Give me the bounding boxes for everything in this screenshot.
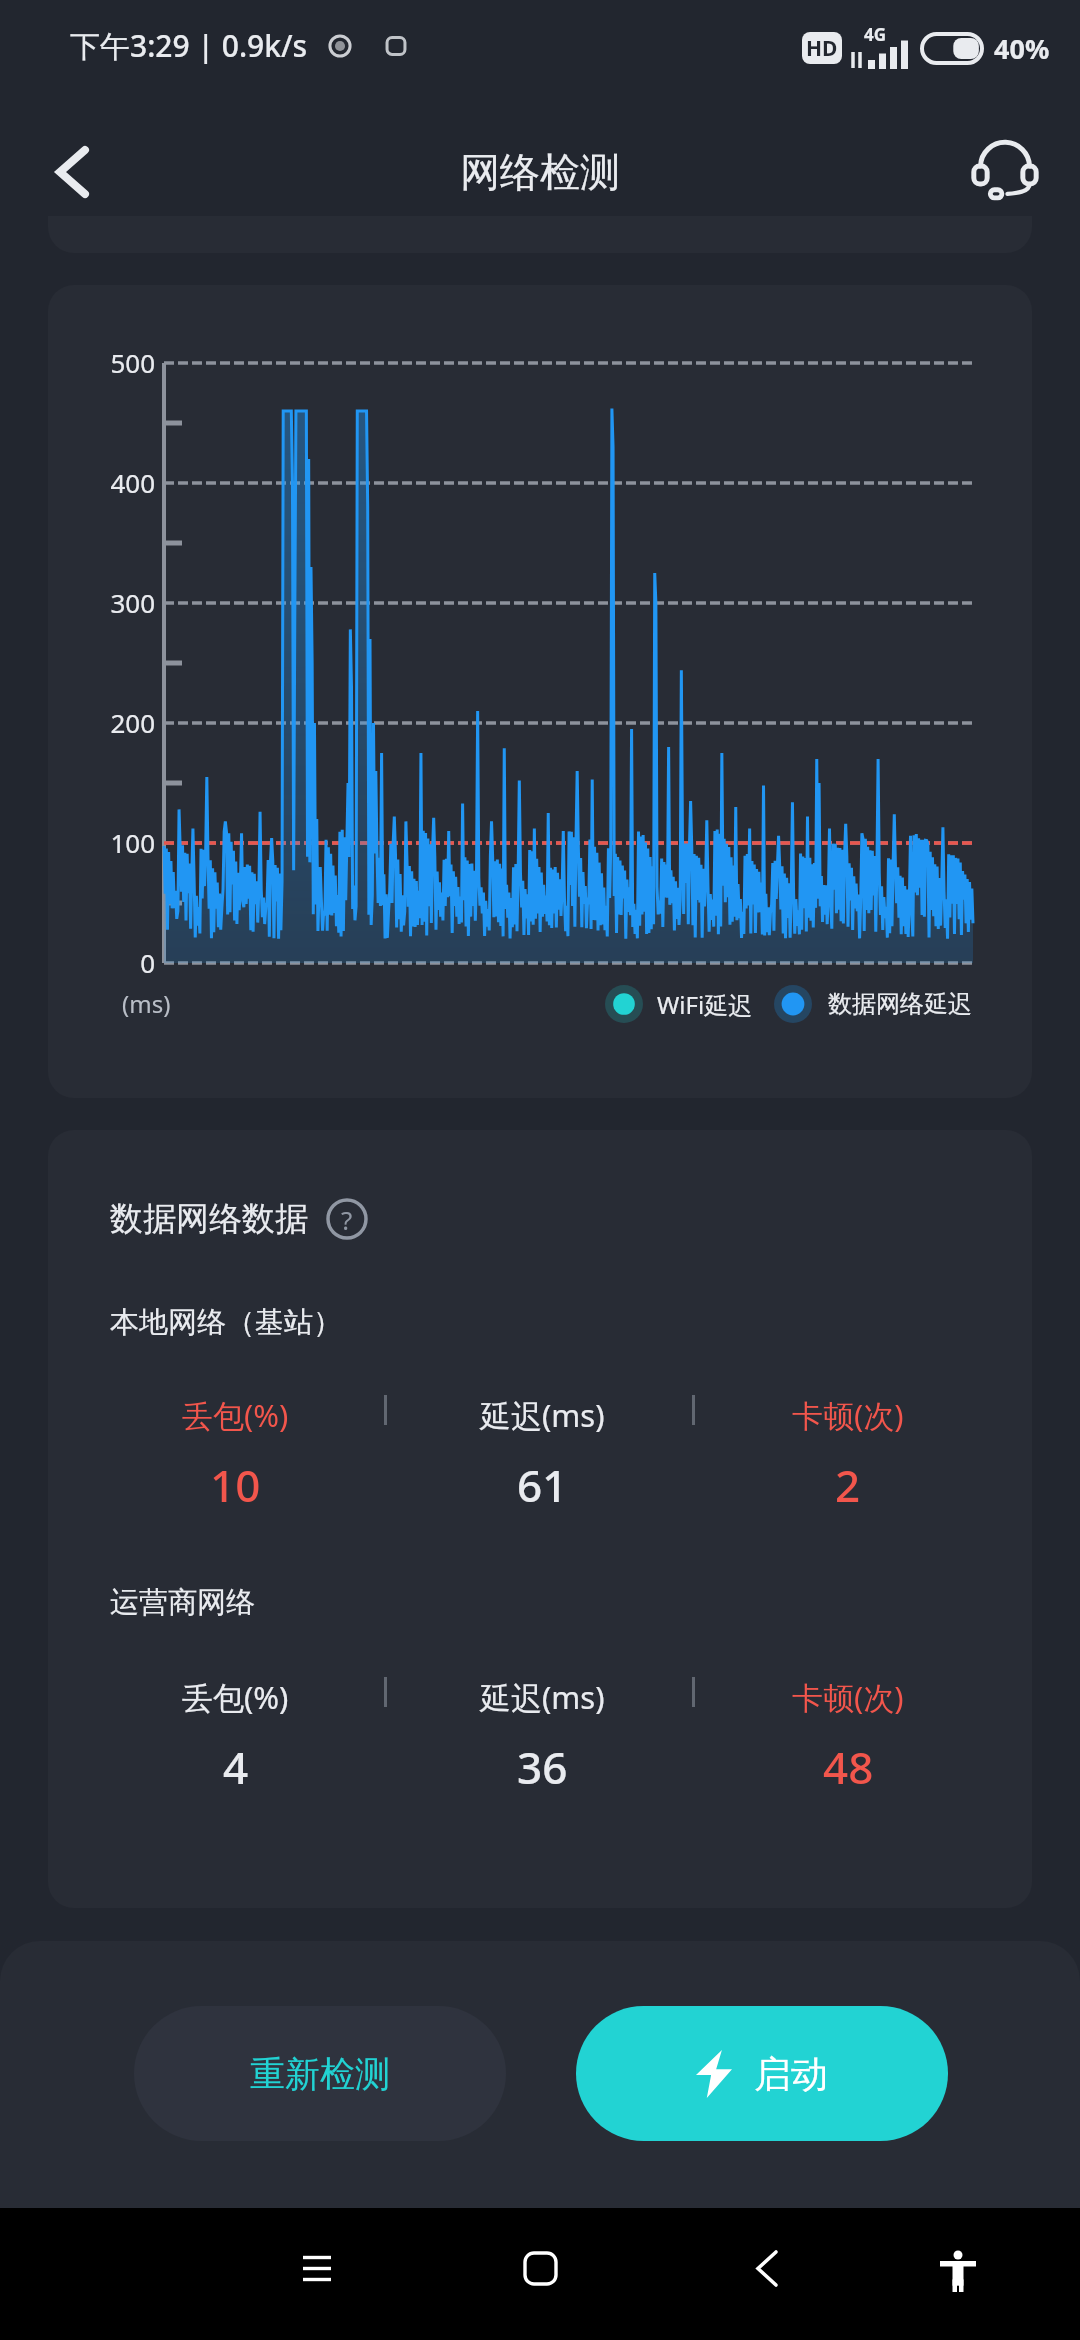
staticText: 启动 [754, 2051, 828, 2098]
staticText: 4 [223, 1737, 249, 1797]
staticText: 卡顿(次) [792, 1676, 904, 1718]
staticText: 数据网络数据 [110, 1198, 308, 1240]
staticText: 丢包(%) [182, 1676, 289, 1718]
staticText: 数据网络延迟 [828, 989, 972, 1019]
staticText: 延迟(ms) [480, 1394, 605, 1436]
button[interactable]: Back [30, 129, 116, 215]
button[interactable]: Menu [287, 2238, 347, 2298]
button[interactable]: Help [326, 1198, 368, 1240]
staticText: 400 [110, 465, 155, 500]
button[interactable]: 启动 [576, 2006, 948, 2141]
staticText: HD [806, 34, 838, 63]
staticText: 0 [140, 945, 155, 980]
staticText: ? [341, 1202, 353, 1237]
staticText: (ms) [122, 987, 171, 1020]
staticText: WiFi延迟 [657, 988, 753, 1021]
staticText: 100 [110, 825, 155, 860]
staticText: 2 [835, 1455, 861, 1515]
staticText: 重新检测 [250, 2052, 390, 2096]
staticText: 300 [110, 585, 155, 620]
staticText: 网络检测 [460, 147, 620, 197]
staticText: 本地网络（基站） [110, 1304, 342, 1341]
button[interactable]: Customer service [962, 129, 1048, 215]
staticText: 500 [110, 345, 155, 380]
staticText: 36 [517, 1737, 568, 1797]
staticText: 40% [994, 30, 1050, 67]
staticText: 10 [210, 1455, 261, 1515]
staticText: 61 [517, 1455, 568, 1515]
button[interactable]: Accessibility [928, 2241, 988, 2301]
staticText: 48 [823, 1737, 874, 1797]
staticText: 4G [864, 23, 887, 46]
button[interactable]: 重新检测 [134, 2006, 506, 2141]
staticText: 丢包(%) [182, 1394, 289, 1436]
staticText: 200 [110, 705, 155, 740]
staticText: 延迟(ms) [480, 1676, 605, 1718]
staticText: 卡顿(次) [792, 1394, 904, 1436]
button[interactable]: Home [510, 2238, 570, 2298]
staticText: 下午3:29 | 0.9k/s [70, 25, 308, 66]
button[interactable]: Back [737, 2238, 797, 2298]
staticText: 运营商网络 [110, 1584, 255, 1621]
